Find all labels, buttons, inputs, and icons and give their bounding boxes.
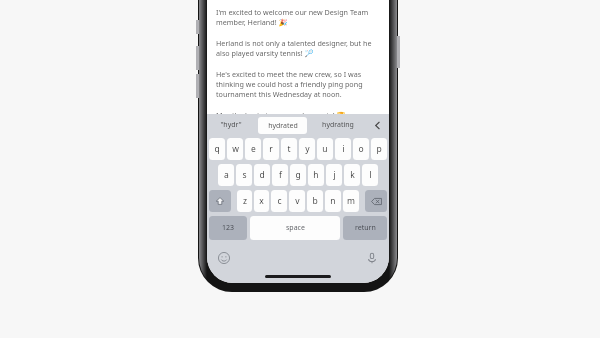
staticText: q: [214, 143, 220, 155]
button[interactable]: Shift: [209, 190, 231, 212]
button[interactable]: w: [227, 138, 243, 160]
staticText: May the best ping pong player win! 🏆: [216, 110, 346, 114]
staticText: u: [322, 143, 328, 155]
button[interactable]: n: [325, 190, 341, 212]
staticText: Herland is not only a talented designer,…: [216, 38, 372, 48]
button[interactable]: 123: [209, 216, 247, 240]
button[interactable]: h: [308, 164, 324, 186]
button[interactable]: k: [344, 164, 360, 186]
staticText: space: [286, 223, 305, 233]
staticText: m: [347, 195, 355, 207]
button[interactable]: m: [343, 190, 359, 212]
button[interactable]: r: [263, 138, 279, 160]
button[interactable]: l: [362, 164, 378, 186]
button[interactable]: "hydr": [207, 114, 255, 136]
staticText: I'm excited to welcome our new Design Te…: [216, 7, 369, 17]
staticText: member, Herland! 🎉: [216, 17, 288, 27]
button[interactable]: i: [335, 138, 351, 160]
button[interactable]: y: [299, 138, 315, 160]
button[interactable]: s: [236, 164, 252, 186]
staticText: thinking we could host a friendly ping p…: [216, 79, 363, 89]
button[interactable]: x: [254, 190, 269, 212]
button[interactable]: j: [326, 164, 342, 186]
staticText: s: [242, 169, 247, 181]
staticText: e: [251, 143, 256, 155]
staticText: c: [277, 195, 282, 207]
button[interactable]: p: [371, 138, 387, 160]
staticText: x: [259, 195, 264, 207]
button[interactable]: f: [272, 164, 288, 186]
button[interactable]: space: [250, 216, 340, 240]
button[interactable]: Emoji: [215, 249, 233, 267]
button[interactable]: hydrating: [310, 114, 365, 136]
staticText: g: [295, 169, 301, 181]
staticText: t: [287, 143, 291, 155]
staticText: i: [342, 143, 345, 155]
button[interactable]: d: [254, 164, 270, 186]
button[interactable]: b: [307, 190, 323, 212]
button[interactable]: c: [271, 190, 287, 212]
staticText: p: [376, 143, 382, 155]
button[interactable]: Backspace: [365, 190, 387, 212]
staticText: n: [330, 195, 336, 207]
staticText: He's excited to meet the new crew, so I …: [216, 69, 362, 79]
staticText: 123: [222, 223, 235, 233]
button[interactable]: e: [245, 138, 261, 160]
button[interactable]: o: [353, 138, 369, 160]
button[interactable]: a: [218, 164, 234, 186]
staticText: w: [232, 143, 239, 155]
staticText: return: [355, 223, 376, 233]
button[interactable]: g: [290, 164, 306, 186]
staticText: r: [269, 143, 273, 155]
button[interactable]: v: [289, 190, 305, 212]
staticText: z: [243, 195, 247, 207]
staticText: hydrating: [322, 120, 354, 130]
staticText: k: [350, 169, 355, 181]
button[interactable]: z: [237, 190, 252, 212]
staticText: hydrated: [268, 121, 298, 131]
staticText: d: [259, 169, 265, 181]
button[interactable]: Dictation: [363, 249, 381, 267]
staticText: a: [224, 169, 229, 181]
button[interactable]: return: [343, 216, 387, 240]
staticText: tournament this Wednesday at noon.: [216, 89, 342, 99]
staticText: b: [312, 195, 318, 207]
staticText: h: [313, 169, 319, 181]
staticText: also played varsity tennis! 🏸: [216, 48, 314, 58]
button[interactable]: t: [281, 138, 297, 160]
staticText: j: [333, 169, 336, 181]
button[interactable]: u: [317, 138, 333, 160]
staticText: v: [295, 195, 300, 207]
staticText: "hydr": [220, 120, 242, 130]
staticText: l: [369, 169, 372, 181]
staticText: f: [279, 169, 282, 181]
button[interactable]: Previous: [365, 114, 389, 136]
button[interactable]: q: [209, 138, 225, 160]
button[interactable]: hydrated: [258, 117, 307, 134]
staticText: o: [358, 143, 364, 155]
staticText: y: [305, 143, 310, 155]
